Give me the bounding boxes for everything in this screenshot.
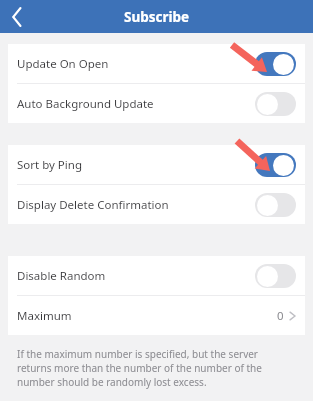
button[interactable]: On bbox=[255, 153, 296, 177]
staticText: If the maximum number is specified, but … bbox=[17, 347, 295, 389]
button[interactable]: Update On Open bbox=[8, 44, 305, 83]
staticText: Display Delete Confirmation bbox=[17, 197, 169, 213]
button[interactable]: Off bbox=[255, 264, 296, 288]
button[interactable]: Off bbox=[255, 92, 296, 116]
staticText: Sort by Ping bbox=[17, 157, 82, 173]
button[interactable]: Off bbox=[255, 193, 296, 217]
staticText: Maximum bbox=[17, 308, 72, 324]
staticText: 0 bbox=[277, 308, 284, 324]
button[interactable]: Sort by Ping bbox=[8, 145, 305, 184]
button[interactable]: Back bbox=[0, 0, 33, 33]
button[interactable]: Disable Random bbox=[8, 256, 305, 295]
button[interactable]: Display Delete Confirmation bbox=[8, 185, 305, 224]
staticText: Disable Random bbox=[17, 268, 106, 284]
button[interactable]: Auto Background Update bbox=[8, 84, 305, 123]
button[interactable]: On bbox=[255, 52, 296, 76]
staticText: Subscribe bbox=[124, 8, 190, 26]
staticText: Update On Open bbox=[17, 56, 109, 72]
button[interactable]: Maximum bbox=[8, 296, 305, 335]
staticText: Auto Background Update bbox=[17, 96, 154, 112]
